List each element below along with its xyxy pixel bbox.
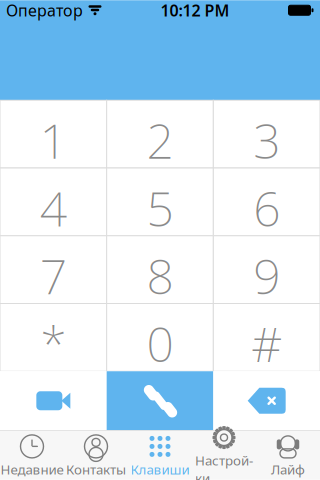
staticText: + [155, 376, 165, 399]
button[interactable]: 0 [107, 303, 213, 371]
button[interactable]: # [213, 303, 320, 371]
button[interactable]: Call [107, 371, 213, 430]
staticText: Контакты [66, 460, 126, 478]
button[interactable]: 5 [107, 168, 213, 236]
staticText: Лайф [271, 460, 305, 478]
staticText: 3 [253, 108, 280, 172]
staticText: 9 [253, 244, 280, 307]
button[interactable]: Настройки [192, 420, 256, 480]
staticText: 0 [146, 311, 173, 375]
staticText: Недавние [0, 460, 63, 478]
staticText: 8 [146, 244, 173, 307]
staticText: 6 [253, 176, 280, 240]
staticText: 5 [146, 176, 173, 240]
button[interactable]: 1 [0, 100, 107, 168]
button[interactable]: Недавние [0, 429, 64, 480]
button[interactable]: 9 [213, 236, 320, 304]
button[interactable]: 7 [0, 236, 107, 304]
staticText: # [251, 311, 282, 375]
staticText: Клавиши [130, 460, 189, 478]
staticText: , [51, 376, 56, 399]
button[interactable]: Лайф [256, 429, 320, 480]
button[interactable]: Контакты [64, 429, 128, 480]
button[interactable]: * [0, 303, 107, 371]
staticText: 4 [40, 176, 67, 240]
staticText: 7 [40, 244, 67, 307]
button[interactable]: Delete [213, 371, 320, 430]
staticText: 1 [40, 108, 67, 172]
button[interactable]: Клавиши [128, 429, 192, 480]
button[interactable]: Video call [0, 371, 107, 430]
staticText: Оператор [6, 0, 83, 21]
staticText: Настройки [195, 451, 253, 480]
button[interactable]: 8 [107, 236, 213, 304]
staticText: * [40, 311, 66, 375]
button[interactable]: 3 [213, 100, 320, 168]
staticText: 10:12 PM [160, 0, 229, 21]
staticText: 2 [146, 108, 173, 172]
button[interactable]: 4 [0, 168, 107, 236]
button[interactable]: 2 [107, 100, 213, 168]
button[interactable]: 6 [213, 168, 320, 236]
